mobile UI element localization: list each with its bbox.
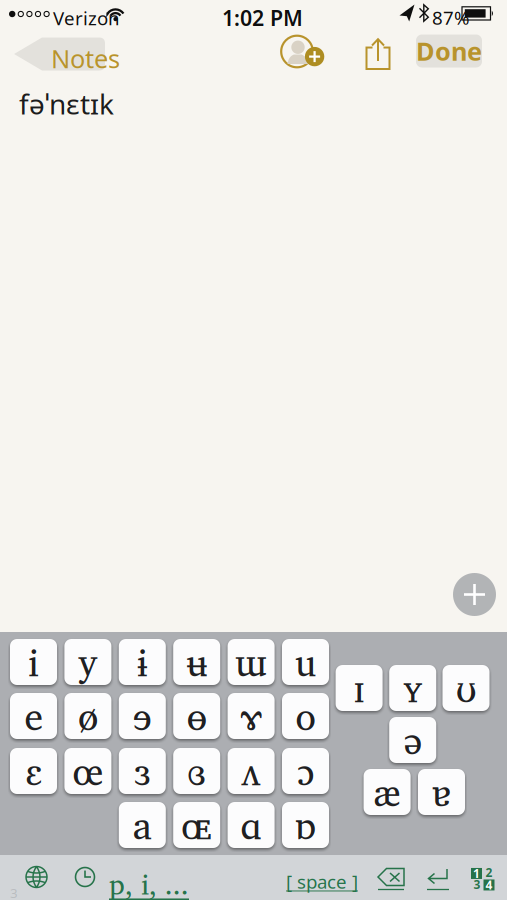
staticText: fəˈnɛtɪk [19, 85, 114, 122]
button[interactable]: ə [389, 717, 436, 763]
button[interactable]: ʏ [389, 665, 436, 711]
staticText: ø [78, 685, 98, 747]
staticText: p, i, ... [109, 861, 189, 900]
button[interactable]: Numbers [0, 0, 11, 16]
staticText: 1 [473, 865, 480, 881]
staticText: ɜ [134, 740, 150, 802]
button[interactable]: ɤ [228, 693, 275, 739]
button[interactable]: ø [64, 693, 111, 739]
button[interactable]: ɞ [173, 748, 220, 794]
staticText: 1:02 PM [222, 3, 303, 32]
button[interactable]: Next keyboard [0, 0, 507, 900]
button[interactable]: Delete [0, 0, 507, 900]
button[interactable]: ɐ [418, 769, 465, 815]
button[interactable]: ɒ [282, 802, 329, 848]
staticText: ɵ [187, 685, 207, 747]
button[interactable]: Recently used [0, 0, 507, 900]
staticText: 3 [10, 884, 18, 900]
button[interactable]: ɶ [173, 802, 220, 848]
staticText: a [133, 794, 152, 856]
staticText: ə [404, 709, 422, 771]
button[interactable]: Consonants [109, 861, 189, 900]
staticText: ɘ [133, 685, 152, 747]
staticText: Notes [51, 41, 120, 75]
staticText: o [295, 685, 315, 747]
button[interactable]: ɘ [119, 693, 166, 739]
button[interactable]: ɯ [228, 639, 275, 685]
staticText: ʉ [186, 631, 207, 693]
button[interactable]: a [119, 802, 166, 848]
staticText: 3 [473, 876, 480, 892]
button[interactable]: Share [0, 0, 507, 900]
button[interactable]: o [282, 693, 329, 739]
staticText: ɒ [295, 794, 316, 856]
staticText: æ [374, 761, 401, 823]
button[interactable]: i [10, 639, 57, 685]
staticText: ɞ [187, 740, 206, 802]
staticText: ɤ [241, 685, 262, 747]
button[interactable]: ʊ [442, 665, 489, 711]
staticText: Verizon [53, 5, 120, 30]
staticText: ʊ [456, 657, 476, 719]
staticText: 4 [485, 877, 492, 893]
button[interactable]: ɔ [282, 748, 329, 794]
staticText: œ [72, 740, 103, 802]
staticText: ʌ [241, 740, 261, 802]
button[interactable]: ɜ [119, 748, 166, 794]
staticText: ɶ [181, 794, 212, 856]
button[interactable]: Add people [0, 0, 507, 900]
button[interactable]: ɑ [228, 802, 275, 848]
button[interactable]: æ [364, 769, 411, 815]
staticText: ɨ [137, 631, 148, 693]
button[interactable]: ʌ [228, 748, 275, 794]
button[interactable]: ɵ [173, 693, 220, 739]
button[interactable]: ɪ [336, 665, 383, 711]
staticText: ɯ [235, 631, 267, 693]
button[interactable]: Back to Notes [0, 0, 507, 900]
staticText: i [28, 631, 39, 693]
button[interactable]: ɨ [119, 639, 166, 685]
button[interactable]: New note [453, 573, 496, 616]
staticText: y [78, 631, 98, 693]
staticText: ɐ [432, 761, 451, 823]
button[interactable]: Return [0, 0, 507, 900]
button[interactable]: ɛ [10, 748, 57, 794]
staticText: 87% [432, 5, 470, 30]
button[interactable]: Space [286, 869, 358, 894]
staticText: ɛ [25, 740, 41, 802]
button[interactable]: u [282, 639, 329, 685]
button[interactable]: y [64, 639, 111, 685]
staticText: ɑ [241, 794, 262, 856]
staticText: Done [416, 34, 482, 68]
button[interactable]: e [10, 693, 57, 739]
button[interactable]: Done [416, 34, 482, 67]
staticText: u [295, 631, 316, 693]
staticText: ɪ [354, 657, 364, 719]
staticText: e [24, 685, 42, 747]
button[interactable]: œ [64, 748, 111, 794]
button[interactable]: ʉ [173, 639, 220, 685]
staticText: ɔ [297, 740, 314, 802]
staticText: 2 [485, 864, 492, 880]
staticText: ʏ [403, 657, 422, 719]
staticText: [ space ] [286, 869, 358, 894]
